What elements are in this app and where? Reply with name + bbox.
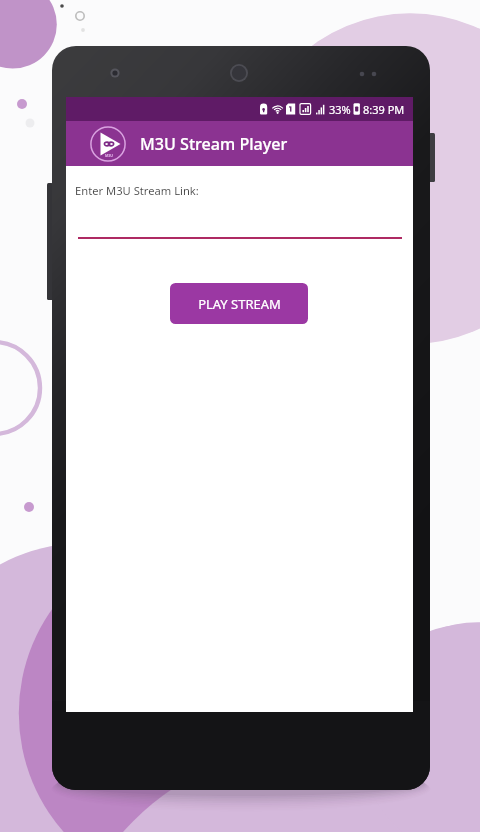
staticText: PLAY STREAM	[198, 295, 281, 313]
staticText: M3U Stream Player	[140, 133, 288, 155]
staticText: M3U	[105, 153, 113, 158]
staticText: 8:39 PM	[363, 102, 405, 117]
other: App logo	[90, 126, 126, 162]
button[interactable]: PLAY STREAM	[170, 283, 308, 324]
staticText: Enter M3U Stream Link:	[75, 183, 199, 198]
staticText: 33%	[329, 102, 351, 117]
